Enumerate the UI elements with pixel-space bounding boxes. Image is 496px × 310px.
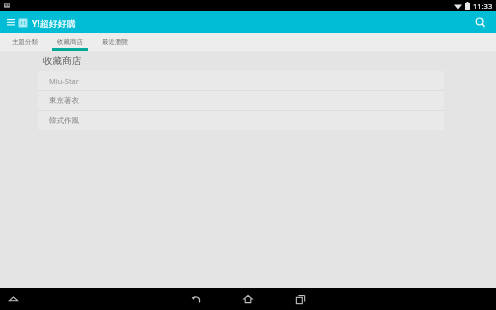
- staticText: 收藏商店: [57, 38, 83, 46]
- staticText: Miu-Star: [49, 76, 79, 86]
- button[interactable]: Miu-Star: [38, 71, 444, 90]
- button[interactable]: Open navigation drawer: [4, 16, 17, 29]
- button[interactable]: 收藏商店: [47, 33, 92, 51]
- button[interactable]: Home: [239, 290, 257, 308]
- button[interactable]: 東京著衣: [38, 91, 444, 110]
- staticText: 東京著衣: [49, 96, 79, 105]
- button[interactable]: Search: [471, 13, 489, 31]
- button[interactable]: Back: [187, 290, 205, 308]
- staticText: 11:33: [473, 1, 493, 11]
- button[interactable]: Recent apps: [291, 290, 309, 308]
- staticText: 最近瀏覽: [102, 38, 128, 46]
- button[interactable]: 韓式作風: [38, 111, 444, 130]
- staticText: 主題分類: [12, 38, 38, 46]
- button[interactable]: Hide: [5, 291, 21, 307]
- button[interactable]: 最近瀏覽: [92, 33, 137, 51]
- button[interactable]: 主題分類: [2, 33, 47, 51]
- staticText: 收藏商店: [43, 55, 81, 67]
- staticText: 韓式作風: [49, 116, 79, 125]
- staticText: Y!超好好購: [32, 17, 76, 29]
